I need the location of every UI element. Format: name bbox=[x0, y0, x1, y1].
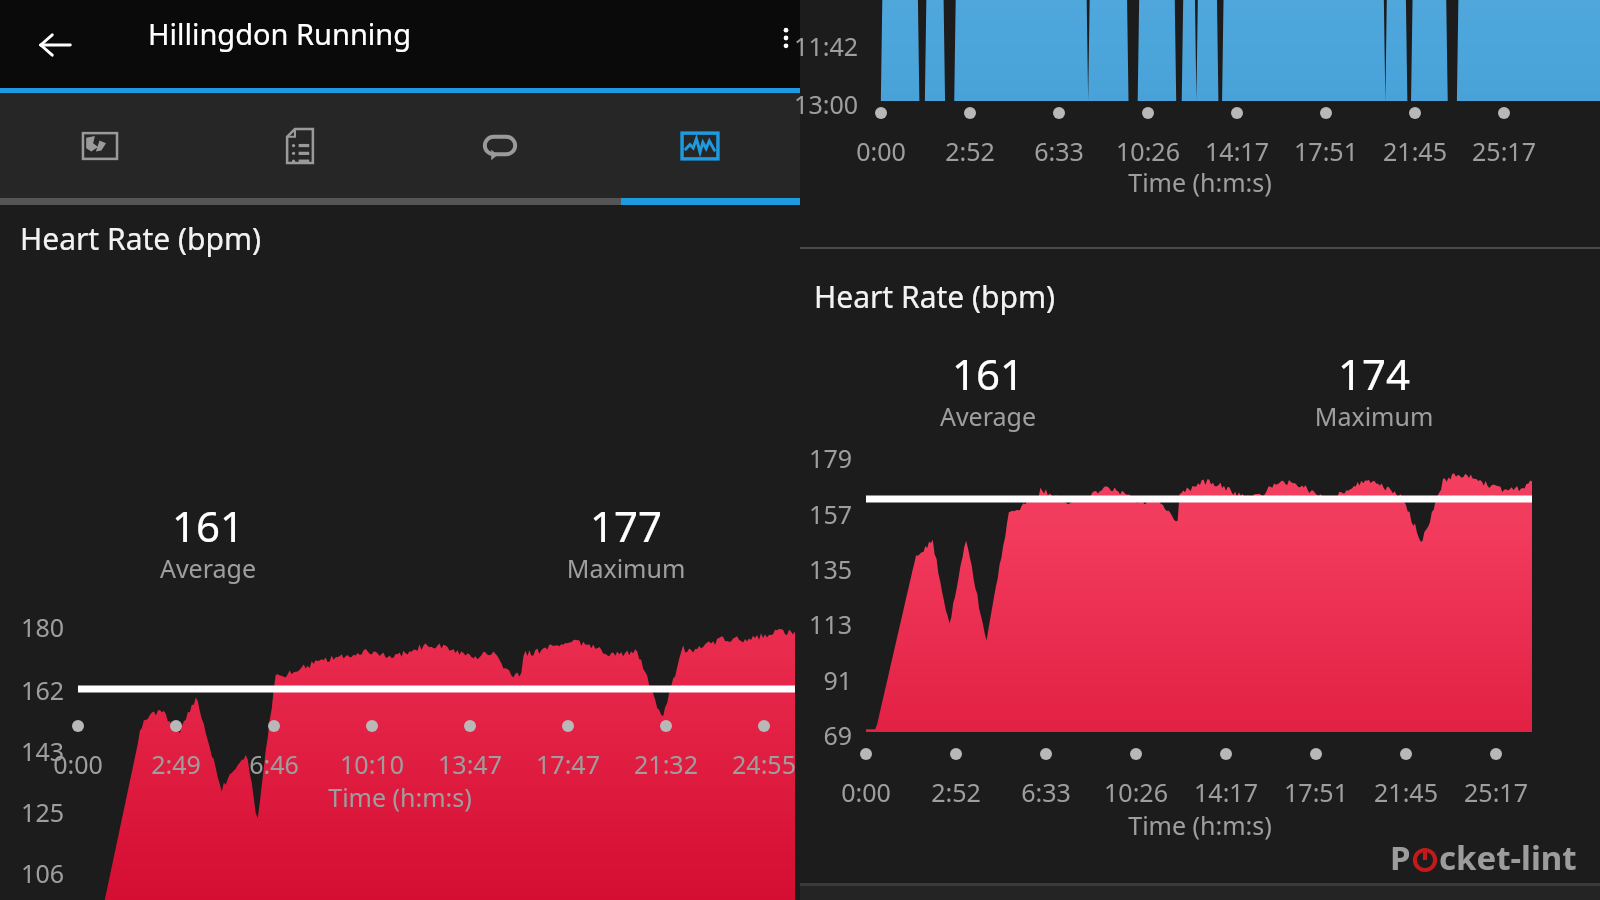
staticText: 6:33 bbox=[999, 134, 1119, 168]
staticText: 157 bbox=[742, 497, 852, 531]
button[interactable]: Map bbox=[0, 93, 200, 198]
staticText: 135 bbox=[742, 552, 852, 586]
staticText: 14:17 bbox=[1166, 775, 1286, 809]
staticText: 11:42 bbox=[748, 29, 858, 63]
staticText: 179 bbox=[742, 441, 852, 475]
staticText: 2:49 bbox=[116, 747, 236, 781]
button[interactable]: Heart rate bbox=[600, 93, 800, 198]
staticText: Time (h:m:s) bbox=[800, 808, 1600, 842]
staticText: 177 bbox=[526, 497, 726, 554]
staticText: Average bbox=[108, 551, 308, 585]
staticText: 161 bbox=[108, 497, 308, 554]
staticText: 143 bbox=[0, 734, 64, 768]
button[interactable]: Back bbox=[26, 16, 84, 74]
staticText: 174 bbox=[1274, 345, 1474, 402]
staticText: 0:00 bbox=[821, 134, 941, 168]
staticText: 17:51 bbox=[1256, 775, 1376, 809]
staticText: Maximum bbox=[1274, 399, 1474, 433]
staticText: Heart Rate (bpm) bbox=[20, 218, 261, 259]
staticText: 21:32 bbox=[606, 747, 726, 781]
staticText: cket-lint bbox=[1439, 835, 1577, 880]
staticText: Time (h:m:s) bbox=[800, 165, 1600, 199]
staticText: 2:52 bbox=[896, 775, 1016, 809]
button[interactable]: More options bbox=[762, 14, 810, 62]
staticText: 13:00 bbox=[748, 87, 858, 121]
staticText: 69 bbox=[742, 718, 852, 752]
staticText: 180 bbox=[0, 610, 64, 644]
staticText: 21:45 bbox=[1355, 134, 1475, 168]
staticText: 10:26 bbox=[1088, 134, 1208, 168]
staticText: 106 bbox=[0, 856, 64, 890]
staticText: 6:33 bbox=[986, 775, 1106, 809]
staticText: Maximum bbox=[526, 551, 726, 585]
staticText: 162 bbox=[0, 673, 64, 707]
staticText: 25:17 bbox=[1444, 134, 1564, 168]
staticText: 25:17 bbox=[1436, 775, 1556, 809]
staticText: 14:17 bbox=[1177, 134, 1297, 168]
staticText: 10:10 bbox=[312, 747, 432, 781]
staticText: 2:52 bbox=[910, 134, 1030, 168]
staticText: 125 bbox=[0, 795, 64, 829]
staticText: 24:55 bbox=[704, 747, 824, 781]
button[interactable]: Laps bbox=[400, 93, 600, 198]
staticText: Average bbox=[888, 399, 1088, 433]
staticText: 13:47 bbox=[410, 747, 530, 781]
staticText: 161 bbox=[888, 345, 1088, 402]
staticText: Time (h:m:s) bbox=[0, 780, 800, 814]
staticText: 0:00 bbox=[18, 747, 138, 781]
staticText: 21:45 bbox=[1346, 775, 1466, 809]
staticText: Hillingdon Running bbox=[148, 14, 412, 53]
staticText: 10:26 bbox=[1076, 775, 1196, 809]
staticText: P bbox=[1390, 835, 1411, 880]
staticText: 91 bbox=[742, 663, 852, 697]
staticText: 17:51 bbox=[1266, 134, 1386, 168]
staticText: 113 bbox=[742, 607, 852, 641]
staticText: 0:00 bbox=[806, 775, 926, 809]
staticText: 17:47 bbox=[508, 747, 628, 781]
staticText: 6:46 bbox=[214, 747, 334, 781]
button[interactable]: Details bbox=[200, 93, 400, 198]
staticText: Heart Rate (bpm) bbox=[814, 276, 1055, 317]
